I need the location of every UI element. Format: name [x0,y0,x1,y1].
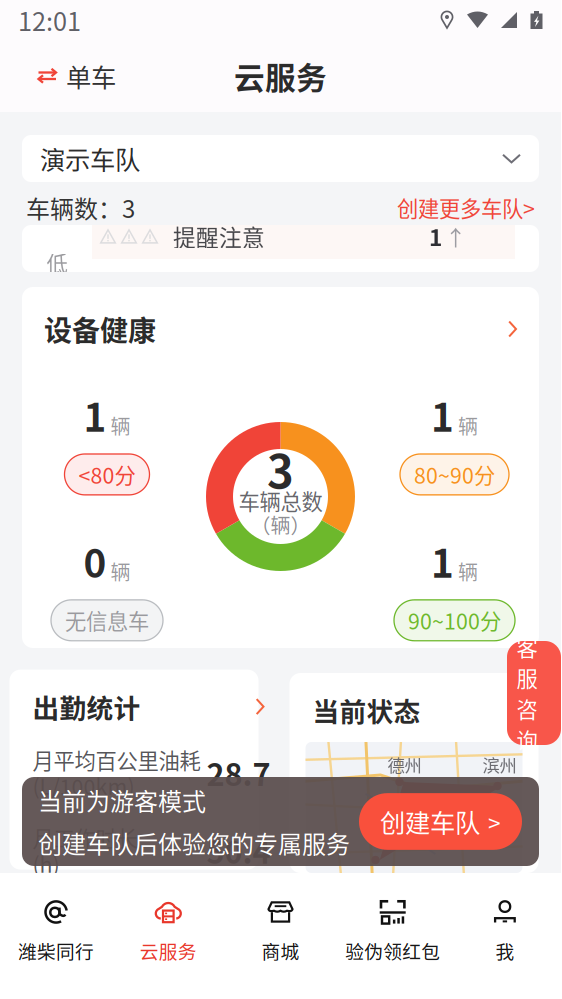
staticText: 询 [516,724,537,755]
staticText: 50.4 [206,828,270,873]
staticText: 辆 [110,557,130,586]
staticText: 3 [267,445,294,492]
staticText: 车辆数：3 [26,190,135,225]
button[interactable]: 验伪领红包 [337,873,449,999]
staticText: 28.7 [206,750,270,795]
staticText: （辆） [250,514,310,535]
staticText: 低 [46,247,67,278]
staticText: 服 [516,662,537,693]
button[interactable]: 商城 [224,873,337,999]
staticText: 云服务 [234,54,327,98]
staticText: (L/100km) [32,773,134,798]
button[interactable]: 我 [449,873,561,999]
staticText: 验伪领红包 [345,937,440,964]
staticText: 滨州 [482,752,516,777]
staticText: 当前为游客模式 [38,783,206,817]
button[interactable]: 当前状态 [289,684,538,736]
staticText: 潍柴同行 [18,937,94,964]
staticText: (h) [32,850,59,876]
staticText: <80分 [78,459,135,490]
button[interactable]: 客服咨询 [507,641,561,745]
staticText: 1 [431,387,454,443]
staticText: 月工作时长 [32,824,137,850]
staticText: 1 [431,533,454,589]
staticText: 90~100分 [408,605,501,636]
staticText: 云服务 [140,937,197,964]
staticText: 车辆总数 [238,489,322,512]
staticText: 出勤统计 [32,687,140,726]
staticText: 1 [429,220,442,253]
staticText: 80~90分 [414,459,495,490]
button[interactable]: 出勤统计 [9,681,284,733]
staticText: 辆 [458,557,478,586]
staticText: > [488,805,501,838]
staticText: 设备健康 [44,309,156,349]
button[interactable]: 云服务 [112,873,224,999]
button[interactable]: 潍柴同行 [0,873,112,999]
button[interactable]: 单车 [34,52,120,100]
staticText: 商城 [261,937,299,964]
button[interactable]: 设备健康 [22,301,539,357]
staticText: 单车 [66,58,116,94]
staticText: 1 [83,387,106,443]
button[interactable]: 创建更多车队> [397,192,535,223]
staticText: 当前状态 [312,691,420,729]
staticText: 咨 [516,693,537,724]
staticText: 辆 [110,411,130,440]
staticText: 德州 [387,752,421,777]
staticText: 创建更多车队> [397,192,535,223]
staticText: 演示车队 [40,140,140,177]
staticText: 月平均百公里油耗 [32,747,200,772]
staticText: 客 [516,631,537,662]
staticText: 0 [83,533,106,589]
staticText: 创建车队后体验您的专属服务 [38,825,350,860]
button[interactable]: 演示车队 [22,135,539,182]
staticText: 我 [495,937,514,964]
staticText: 辆 [458,411,478,440]
staticText: 提醒注意 [173,220,265,253]
button[interactable]: 创建车队 [359,793,522,850]
staticText: 创建车队 [380,803,480,840]
staticText: ↑ [445,221,466,252]
staticText: 无信息车 [65,605,149,636]
staticText: 12:01 [18,2,81,38]
